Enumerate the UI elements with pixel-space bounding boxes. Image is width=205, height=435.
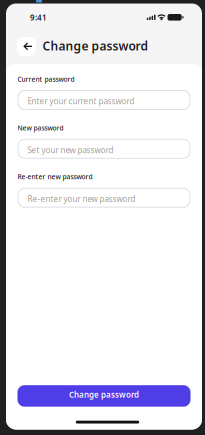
staticText: Current password [17, 75, 74, 83]
textField[interactable]: Re-enter your new password [27, 194, 190, 204]
textField[interactable]: Enter your current password [27, 96, 190, 106]
button[interactable]: Change password [17, 385, 190, 407]
textField[interactable]: Set your new password [27, 145, 190, 155]
staticText: Change password [69, 389, 139, 400]
button[interactable]: Back [17, 37, 36, 56]
staticText: Re-enter your new password [27, 194, 135, 204]
staticText: New password [17, 123, 63, 132]
staticText: Change password [42, 38, 148, 54]
staticText: Enter your current password [27, 96, 134, 106]
staticText: Re-enter new password [17, 172, 92, 181]
staticText: 9:41 [30, 12, 47, 23]
staticText: Set your new password [27, 145, 113, 155]
